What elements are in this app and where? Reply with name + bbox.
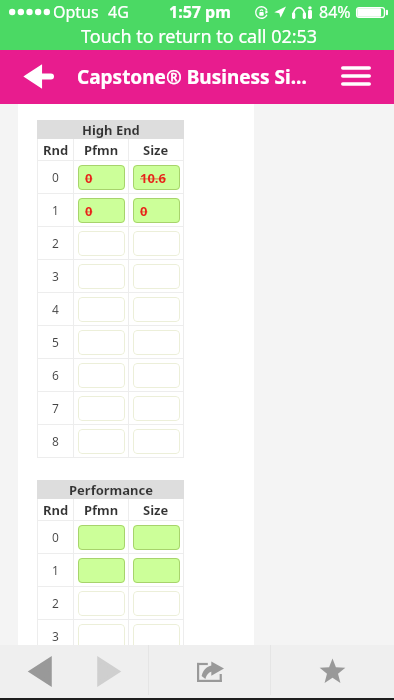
button[interactable] <box>78 231 125 256</box>
staticText: 6 <box>52 367 59 383</box>
button[interactable] <box>133 231 180 256</box>
staticText: 3 <box>52 268 59 284</box>
staticText: 5 <box>52 334 59 350</box>
button[interactable] <box>133 297 180 322</box>
button[interactable] <box>133 264 180 289</box>
button[interactable] <box>133 363 180 388</box>
button[interactable] <box>133 624 180 649</box>
button[interactable] <box>78 525 125 550</box>
button[interactable]: 0 <box>78 165 125 190</box>
button[interactable] <box>78 558 125 583</box>
staticText: 1 <box>52 562 59 578</box>
button[interactable]: Bookmarks <box>304 645 360 697</box>
button[interactable] <box>78 264 125 289</box>
button[interactable]: Back <box>12 49 66 103</box>
button[interactable] <box>78 396 125 421</box>
staticText: Rnd <box>43 501 69 519</box>
staticText: Pfmn <box>84 501 119 519</box>
staticText: Pfmn <box>84 141 119 159</box>
staticText: 1:57 pm <box>169 1 231 23</box>
button[interactable] <box>78 624 125 649</box>
staticText: Rnd <box>43 141 69 159</box>
staticText: 0 <box>52 529 59 545</box>
button[interactable] <box>133 330 180 355</box>
staticText: Touch to return to call 02:53 <box>81 24 318 49</box>
button[interactable] <box>133 429 180 454</box>
staticText: Size <box>143 141 169 159</box>
button[interactable] <box>133 591 180 616</box>
staticText: High End <box>82 121 140 139</box>
staticText: 1 <box>52 202 59 218</box>
staticText: 2 <box>52 595 59 611</box>
staticText: 8 <box>52 433 59 449</box>
button[interactable] <box>78 330 125 355</box>
staticText: 0 <box>85 202 93 220</box>
staticText: Size <box>143 501 169 519</box>
button[interactable]: Share <box>182 645 238 697</box>
staticText: 7 <box>52 400 59 416</box>
staticText: 0 <box>52 169 59 185</box>
staticText: 0 <box>85 169 93 187</box>
staticText: 10.6 <box>140 169 166 187</box>
staticText: Optus <box>53 1 99 23</box>
staticText: 2 <box>52 235 59 251</box>
staticText: Capstone® Business Si... <box>77 64 307 90</box>
staticText: 84% <box>319 1 351 23</box>
button[interactable] <box>133 396 180 421</box>
button[interactable] <box>133 558 180 583</box>
staticText: 3 <box>52 628 59 644</box>
button[interactable]: 0 <box>133 198 180 223</box>
button[interactable]: Menu <box>329 49 383 103</box>
button[interactable]: Back <box>11 645 67 697</box>
button[interactable] <box>78 363 125 388</box>
staticText: 4G <box>108 1 129 23</box>
button[interactable]: 10.6 <box>133 165 180 190</box>
button[interactable] <box>78 429 125 454</box>
button[interactable] <box>78 591 125 616</box>
staticText: 0 <box>140 202 148 220</box>
button[interactable] <box>133 525 180 550</box>
button[interactable] <box>78 297 125 322</box>
staticText: 4 <box>52 301 59 317</box>
button[interactable]: Forward <box>81 645 137 697</box>
staticText: Performance <box>69 481 153 499</box>
button[interactable] <box>78 653 125 661</box>
button[interactable]: 0 <box>78 198 125 223</box>
